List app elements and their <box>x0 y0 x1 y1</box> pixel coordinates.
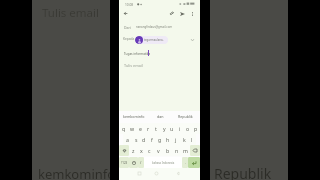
button[interactable]: Backspace <box>190 145 200 156</box>
button[interactable]: Shift <box>119 145 129 156</box>
button[interactable]: a <box>123 134 132 145</box>
button[interactable]: Republik <box>171 111 200 122</box>
button[interactable]: i <box>176 123 184 134</box>
button[interactable]: z <box>129 145 137 156</box>
button[interactable]: Enter <box>188 157 200 168</box>
button[interactable]: v <box>154 145 163 156</box>
staticText: y <box>163 125 166 132</box>
button[interactable]: / <box>138 157 144 168</box>
staticText: r <box>147 125 150 132</box>
staticText: e <box>139 125 142 132</box>
button[interactable]: bahasa Indonesia <box>144 157 182 168</box>
button[interactable]: Recent apps <box>135 169 144 178</box>
button[interactable]: o <box>184 123 192 134</box>
staticText: Dari <box>124 25 131 30</box>
button[interactable]: r <box>144 123 152 134</box>
staticText: kemkominfo <box>38 165 116 180</box>
button[interactable]: w <box>128 123 136 134</box>
button[interactable]: n <box>172 145 181 156</box>
button[interactable]: d <box>140 134 148 145</box>
staticText: f <box>151 136 153 143</box>
staticText: n <box>175 147 179 154</box>
staticText: d <box>142 136 146 143</box>
button[interactable]: Tugas informatika <box>119 47 200 57</box>
button[interactable]: More options <box>188 9 197 18</box>
staticText: m <box>183 147 188 154</box>
button[interactable]: Back <box>121 9 130 18</box>
button[interactable]: tegarmaulana.. <box>135 36 168 44</box>
button[interactable]: Home <box>152 169 161 178</box>
staticText: b <box>166 147 170 154</box>
staticText: ?123 <box>121 161 128 165</box>
staticText: v <box>157 147 160 154</box>
button[interactable]: Emoji <box>129 157 138 168</box>
staticText: bahasa Indonesia <box>152 161 175 165</box>
button[interactable]: k <box>180 134 188 145</box>
staticText: a <box>126 136 129 143</box>
staticText: p <box>194 125 198 132</box>
staticText: Tugas informatika <box>124 52 151 56</box>
button[interactable]: p <box>192 123 200 134</box>
staticText: tegarmaulana.. <box>144 38 165 42</box>
staticText: Tulis email <box>42 5 99 21</box>
button[interactable]: y <box>160 123 168 134</box>
staticText: q <box>122 125 126 132</box>
staticText: 10.08 <box>125 3 134 7</box>
button[interactable]: Tulis email <box>119 59 200 69</box>
button[interactable]: ?123 <box>119 157 129 168</box>
button[interactable]: dan <box>149 111 171 122</box>
staticText: Republik <box>178 114 193 119</box>
button[interactable]: g <box>156 134 164 145</box>
button[interactable]: . <box>182 157 188 168</box>
button[interactable]: j <box>172 134 180 145</box>
button[interactable]: h <box>164 134 172 145</box>
button[interactable]: f <box>148 134 156 145</box>
button[interactable]: Attach file <box>167 9 176 18</box>
button[interactable]: Back <box>173 169 182 178</box>
staticText: u <box>170 125 174 132</box>
staticText: i <box>179 125 181 132</box>
button[interactable]: Dari <box>119 22 200 30</box>
staticText: k <box>183 136 186 143</box>
button[interactable]: Send <box>178 9 187 18</box>
staticText: s <box>135 136 138 143</box>
button[interactable]: u <box>168 123 176 134</box>
staticText: z <box>132 147 135 154</box>
button[interactable]: m <box>181 145 190 156</box>
staticText: Tulis email <box>124 63 143 68</box>
staticText: c <box>148 147 151 154</box>
staticText: Kepada <box>123 37 135 41</box>
staticText: g <box>158 136 162 143</box>
button[interactable]: l <box>188 134 196 145</box>
staticText: kemkominfo <box>123 114 145 119</box>
button[interactable]: q <box>119 123 128 134</box>
staticText: nanangfirdaus@gmail.com <box>136 25 173 29</box>
staticText: Republik <box>214 164 272 180</box>
button[interactable]: x <box>137 145 145 156</box>
staticText: l <box>191 136 193 143</box>
staticText: h <box>166 136 170 143</box>
staticText: o <box>186 125 190 132</box>
staticText: x <box>140 147 143 154</box>
staticText: t <box>155 125 157 132</box>
staticText: w <box>130 125 135 132</box>
staticText: j <box>175 136 177 143</box>
button[interactable]: b <box>163 145 172 156</box>
button[interactable]: s <box>132 134 140 145</box>
button[interactable]: e <box>136 123 144 134</box>
staticText: . <box>185 160 186 165</box>
button[interactable]: kemkominfo <box>120 111 147 122</box>
button[interactable]: t <box>152 123 160 134</box>
staticText: / <box>140 160 142 165</box>
button[interactable]: Expand recipients <box>189 36 196 43</box>
staticText: dan <box>157 114 164 119</box>
button[interactable]: c <box>145 145 154 156</box>
